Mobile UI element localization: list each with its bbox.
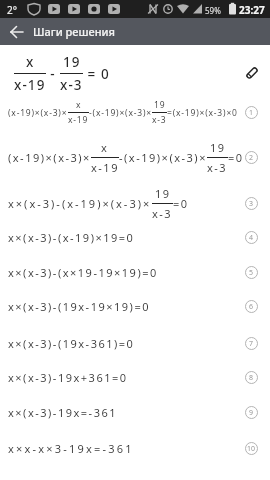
staticText: 19 <box>210 140 226 155</box>
button[interactable]: (x-19)×(x-3)× <box>0 135 270 179</box>
button[interactable]: x×(x-3)-(19x-19×19)=0 <box>0 296 270 316</box>
staticText: 10 <box>247 444 256 454</box>
button[interactable]: x×x-x×3-19x=-361 <box>0 438 270 458</box>
staticText: x-19 <box>68 114 89 126</box>
staticText: 5 <box>249 268 254 278</box>
staticText: =0 <box>228 150 244 165</box>
staticText: Шаги решения <box>33 24 116 39</box>
staticText: = 0 <box>83 65 110 83</box>
staticText: 59% <box>205 5 221 16</box>
staticText: 4 <box>249 233 254 243</box>
staticText: x×(x-3)-(x×19-19×19)=0 <box>8 265 158 280</box>
staticText: 19 <box>155 186 171 201</box>
button[interactable] <box>4 18 30 45</box>
staticText: x×(x-3)-19x+361=0 <box>8 370 128 385</box>
staticText: 2° <box>7 3 17 17</box>
staticText: 19 <box>63 53 81 71</box>
staticText: 1 <box>249 108 254 118</box>
staticText: 19 <box>154 99 166 111</box>
staticText: x-3 <box>207 160 228 175</box>
button[interactable]: x×(x-3)-(19x-361)=0 <box>0 333 270 353</box>
staticText: x-3 <box>152 206 173 221</box>
staticText: x×(x-3)-(x-19)×(x-3)× <box>8 196 152 211</box>
staticText: x-3 <box>60 76 83 94</box>
button[interactable]: x×(x-3)-(x×19-19×19)=0 <box>0 262 270 282</box>
staticText: =(x-19)×(x-3)×0 <box>167 107 238 119</box>
staticText: x×(x-3)-(19x-19×19)=0 <box>8 299 150 314</box>
staticText: x×x-x×3-19x=-361 <box>8 441 134 456</box>
staticText: 2 <box>249 153 254 163</box>
button[interactable]: x×(x-3)-19x=-361 <box>0 402 270 422</box>
staticText: (x-19)×(x-3)× <box>8 150 91 165</box>
staticText: x <box>26 53 35 71</box>
button[interactable]: x×(x-3)-19x+361=0 <box>0 367 270 387</box>
button[interactable] <box>243 64 261 82</box>
staticText: - <box>46 65 60 83</box>
staticText: 3 <box>249 199 254 209</box>
staticText: x <box>76 99 82 111</box>
button[interactable]: x×(x-3)-(x-19)×(x-3)× <box>0 183 270 223</box>
staticText: x×(x-3)-(19x-361)=0 <box>8 336 135 351</box>
staticText: x-19 <box>14 76 46 94</box>
staticText: =0 <box>173 196 189 211</box>
staticText: 8 <box>249 373 254 383</box>
staticText: 9 <box>249 408 254 418</box>
staticText: x-19 <box>91 160 119 175</box>
staticText: 23:27 <box>239 3 265 17</box>
staticText: 6 <box>249 302 254 312</box>
staticText: -(x-19)×(x-3)× <box>89 107 152 119</box>
staticText: x×(x-3)-(x-19)×19=0 <box>8 230 135 245</box>
button[interactable]: x×(x-3)-(x-19)×19=0 <box>0 227 270 247</box>
staticText: 7 <box>249 339 254 349</box>
staticText: x×(x-3)-19x=-361 <box>8 405 118 420</box>
staticText: -(x-19)×(x-3)× <box>119 150 207 165</box>
staticText: x-3 <box>152 114 167 126</box>
staticText: x <box>101 140 109 155</box>
button[interactable]: (x-19)×(x-3)× <box>0 95 270 129</box>
staticText: (x-19)×(x-3)× <box>8 107 68 119</box>
